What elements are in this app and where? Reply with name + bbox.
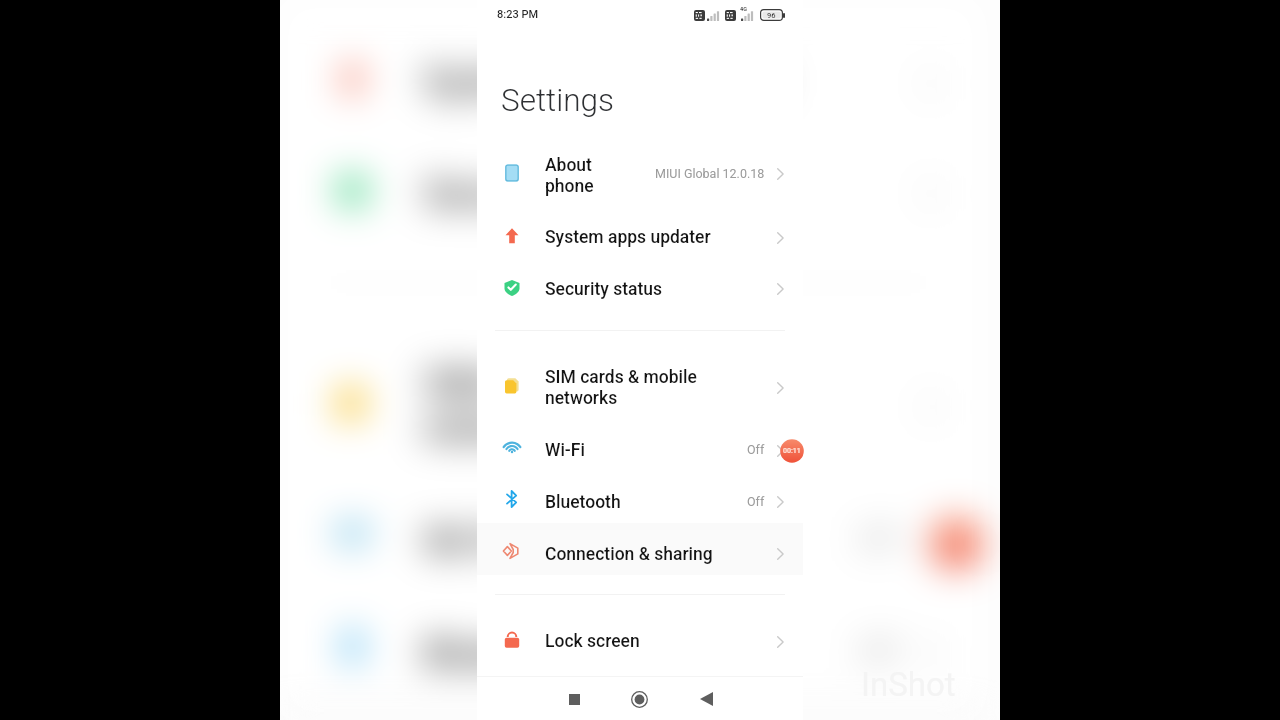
button[interactable] [477, 362, 803, 414]
staticText: 96 [767, 11, 776, 20]
button[interactable] [477, 150, 803, 202]
button[interactable] [280, 351, 980, 463]
staticText: SIM cards & mobile networks [545, 367, 745, 409]
staticText: 8:23 PM [497, 8, 539, 21]
staticText: Lock screen [545, 631, 745, 652]
staticText: SIM cards & mobile networks [424, 362, 855, 452]
button[interactable] [477, 476, 803, 528]
button[interactable] [477, 424, 803, 476]
button[interactable] [280, 597, 980, 709]
button[interactable]: Home [616, 678, 662, 720]
button[interactable] [477, 528, 803, 580]
staticText: Security status [424, 172, 855, 217]
button[interactable] [477, 263, 803, 315]
staticText: MIUI Global 12.0.18 [655, 166, 765, 181]
staticText: Bluetooth [545, 492, 745, 513]
staticText: Security status [545, 279, 745, 300]
staticText: System apps updater [545, 227, 745, 248]
staticText: Settings [501, 82, 615, 119]
button[interactable]: Recent apps [551, 678, 597, 720]
staticText: InShot [861, 665, 956, 704]
button[interactable] [280, 25, 980, 137]
button[interactable] [477, 616, 803, 668]
staticText: Connection & sharing [545, 544, 745, 565]
staticText: Wi-Fi [424, 519, 855, 564]
button[interactable]: Back [683, 678, 729, 720]
staticText: 00:11 [937, 534, 976, 551]
staticText: Off [747, 494, 765, 509]
staticText: 00:11 [783, 447, 801, 455]
button[interactable] [280, 137, 980, 249]
staticText: System apps updater [424, 60, 855, 105]
staticText: About phone [545, 155, 745, 197]
staticText: Bluetooth [424, 631, 855, 676]
staticText: Wi-Fi [545, 440, 745, 461]
button[interactable] [280, 485, 980, 597]
button[interactable] [477, 211, 803, 263]
staticText: 4G [740, 6, 747, 12]
staticText: Off [747, 442, 765, 457]
